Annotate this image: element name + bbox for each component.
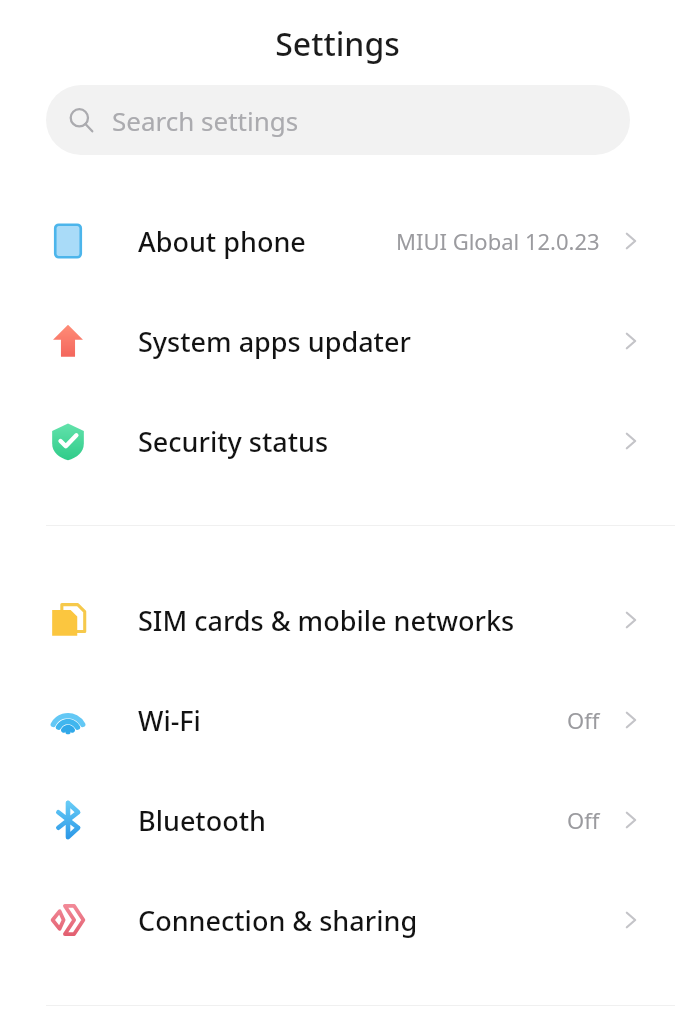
button[interactable]: About phone <box>0 191 675 291</box>
staticText: SIM cards & mobile networks <box>138 602 618 639</box>
staticText: Bluetooth <box>138 802 567 839</box>
staticText: MIUI Global 12.0.23 <box>396 226 600 256</box>
staticText: Security status <box>138 423 618 460</box>
button[interactable]: Bluetooth <box>0 770 675 870</box>
staticText: Off <box>567 705 600 735</box>
staticText: System apps updater <box>138 323 618 360</box>
button[interactable]: Security status <box>0 391 675 491</box>
button[interactable]: Search settings <box>46 85 630 155</box>
staticText: Connection & sharing <box>138 902 618 939</box>
button[interactable]: System apps updater <box>0 291 675 391</box>
staticText: Search settings <box>112 103 299 138</box>
button[interactable]: SIM cards & mobile networks <box>0 570 675 670</box>
button[interactable]: Wi-Fi <box>0 670 675 770</box>
staticText: About phone <box>138 223 396 260</box>
staticText: Off <box>567 805 600 835</box>
staticText: Wi-Fi <box>138 702 567 739</box>
staticText: Settings <box>275 22 400 66</box>
button[interactable]: Connection & sharing <box>0 870 675 970</box>
